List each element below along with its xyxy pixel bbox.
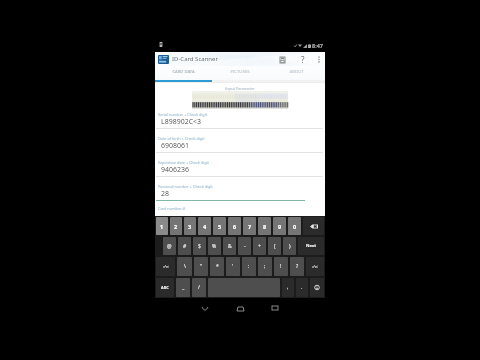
button[interactable]: @ bbox=[163, 237, 176, 255]
button[interactable]: * bbox=[210, 257, 224, 276]
button[interactable]: ( bbox=[268, 237, 281, 255]
staticText: ' bbox=[232, 263, 234, 270]
button[interactable]: ; bbox=[258, 257, 272, 276]
button[interactable]: Help bbox=[293, 53, 313, 66]
button[interactable]: ABOUT bbox=[268, 66, 325, 80]
button[interactable]: . bbox=[296, 278, 308, 297]
button[interactable]: 0 bbox=[288, 217, 301, 235]
button[interactable]: 9 bbox=[273, 217, 286, 235]
button[interactable]: Recents bbox=[264, 300, 286, 316]
button[interactable]: ' bbox=[226, 257, 240, 276]
button[interactable]: Key bbox=[310, 278, 324, 297]
staticText: Date of birth + Check digit bbox=[158, 136, 205, 141]
staticText: - bbox=[244, 243, 246, 250]
button[interactable]: : bbox=[242, 257, 256, 276]
button[interactable]: More options bbox=[313, 53, 325, 66]
button[interactable]: _ bbox=[176, 278, 190, 297]
button[interactable]: 6 bbox=[228, 217, 241, 235]
button[interactable]: ! bbox=[274, 257, 288, 276]
button[interactable]: 7 bbox=[243, 217, 256, 235]
staticText: =\< bbox=[312, 264, 318, 269]
button[interactable]: + bbox=[253, 237, 266, 255]
button[interactable]: $ bbox=[193, 237, 206, 255]
staticText: , bbox=[287, 284, 289, 291]
staticText: # bbox=[183, 243, 187, 250]
button[interactable]: / bbox=[192, 278, 206, 297]
staticText: * bbox=[216, 263, 219, 270]
button[interactable]: 8 bbox=[258, 217, 271, 235]
staticText: Expiration date + Check digit bbox=[158, 160, 209, 165]
button[interactable]: 3 bbox=[184, 217, 196, 235]
staticText: + bbox=[258, 243, 261, 250]
button[interactable]: Save card bbox=[272, 53, 293, 66]
staticText: 5 bbox=[218, 223, 222, 230]
staticText: 8 bbox=[263, 223, 267, 230]
button[interactable]: Home bbox=[229, 300, 251, 316]
staticText: 3 bbox=[188, 223, 192, 230]
staticText: 6908061 bbox=[161, 141, 190, 151]
staticText: 1 bbox=[160, 223, 164, 230]
button[interactable]: 4 bbox=[198, 217, 211, 235]
staticText: % bbox=[212, 243, 217, 250]
button[interactable]: % bbox=[208, 237, 221, 255]
button[interactable]: " bbox=[194, 257, 208, 276]
staticText: ( bbox=[274, 243, 276, 250]
button[interactable]: \ bbox=[177, 257, 192, 276]
staticText: PICTURES bbox=[230, 69, 250, 75]
staticText: 7 bbox=[248, 223, 252, 230]
button[interactable]: =\< bbox=[156, 257, 175, 276]
staticText: L898902C<3 bbox=[161, 117, 202, 127]
button[interactable]: ) bbox=[283, 237, 296, 255]
staticText: 0 bbox=[293, 223, 297, 230]
staticText: =\< bbox=[163, 264, 169, 269]
staticText: 9 bbox=[278, 223, 282, 230]
button[interactable]: =\< bbox=[306, 257, 324, 276]
staticText: Input Parameter bbox=[155, 86, 325, 91]
button[interactable]: App icon bbox=[158, 55, 169, 64]
button[interactable]: 1 bbox=[156, 217, 168, 235]
staticText: ? bbox=[301, 54, 305, 65]
staticText: / bbox=[198, 284, 200, 291]
staticText: " bbox=[200, 263, 203, 270]
staticText: _ bbox=[182, 284, 185, 291]
button[interactable]: PICTURES bbox=[211, 66, 268, 80]
staticText: : bbox=[248, 263, 250, 270]
staticText: ABC bbox=[161, 285, 169, 290]
staticText: ; bbox=[264, 263, 266, 270]
staticText: @ bbox=[167, 243, 172, 250]
button[interactable]: 5 bbox=[213, 217, 226, 235]
button[interactable]: # bbox=[178, 237, 191, 255]
staticText: ? bbox=[296, 263, 299, 270]
button[interactable]: , bbox=[282, 278, 294, 297]
staticText: 2 bbox=[174, 223, 178, 230]
staticText: ! bbox=[280, 263, 282, 270]
staticText: ABOUT bbox=[289, 69, 304, 75]
button[interactable]: 2 bbox=[170, 217, 182, 235]
staticText: 4 bbox=[203, 223, 207, 230]
staticText: & bbox=[228, 243, 232, 250]
staticText: . bbox=[301, 284, 303, 291]
staticText: 28 bbox=[161, 189, 170, 199]
staticText: \ bbox=[184, 263, 186, 270]
button[interactable]: ? bbox=[290, 257, 304, 276]
staticText: 9406236 bbox=[161, 165, 190, 175]
button[interactable]: - bbox=[238, 237, 251, 255]
staticText: Personal number + Check digit bbox=[158, 184, 213, 189]
button[interactable]: Key bbox=[303, 217, 324, 235]
staticText: Card number # bbox=[158, 206, 186, 211]
button[interactable]: CARD DATA bbox=[155, 66, 211, 80]
staticText: $ bbox=[198, 243, 201, 250]
staticText: Serial number + Check digit bbox=[158, 112, 208, 117]
staticText: 6 bbox=[233, 223, 237, 230]
staticText: 8:47 bbox=[312, 42, 323, 49]
staticText: CARD DATA bbox=[172, 69, 195, 75]
staticText: ) bbox=[289, 243, 291, 250]
button[interactable]: Back bbox=[194, 300, 216, 316]
button[interactable]: Next bbox=[298, 237, 324, 255]
button[interactable]: ABC bbox=[156, 278, 174, 297]
staticText: Next bbox=[306, 243, 317, 249]
button[interactable]: & bbox=[223, 237, 236, 255]
staticText: ID-Card Scanner bbox=[172, 55, 218, 63]
